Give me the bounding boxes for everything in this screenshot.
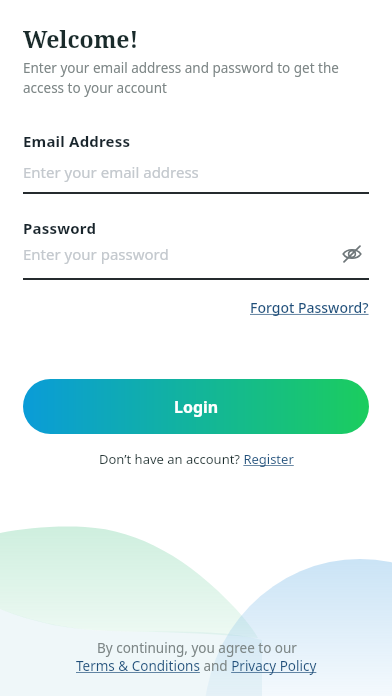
staticText: Forgot Password? — [250, 298, 369, 317]
staticText: Enter your email address and password to… — [23, 59, 339, 97]
staticText: Enter your email address — [23, 162, 199, 182]
staticText: By continuing, you agree to our — [97, 639, 297, 657]
staticText: Terms & Conditions and Privacy Policy — [76, 657, 317, 675]
button[interactable]: Forgot Password? — [250, 298, 369, 317]
button[interactable] — [342, 243, 362, 265]
staticText: Email Address — [23, 131, 131, 151]
staticText: Login — [174, 396, 219, 418]
button[interactable]: Terms & Conditions and Privacy Policy — [76, 657, 317, 675]
button[interactable]: Enter your email address — [23, 151, 369, 194]
staticText: Don’t have an account? Register — [99, 450, 294, 468]
staticText: Enter your password — [23, 244, 342, 264]
staticText: Welcome! — [23, 23, 139, 54]
button[interactable]: Don’t have an account? Register — [23, 450, 369, 468]
staticText: Password — [23, 218, 97, 238]
button[interactable]: Enter your password — [23, 238, 369, 280]
button[interactable]: Login — [23, 379, 369, 434]
